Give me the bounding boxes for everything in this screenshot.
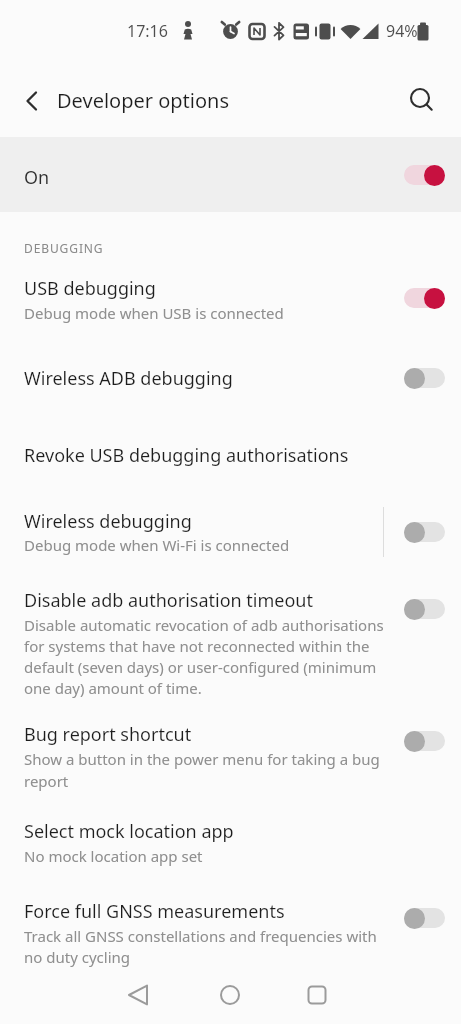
staticText: report — [24, 771, 69, 791]
button[interactable]: Bug report shortcut — [0, 711, 461, 793]
staticText: Force full GNSS measurements — [24, 899, 285, 924]
button[interactable] — [299, 977, 335, 1013]
button[interactable]: Select mock location app — [0, 808, 461, 878]
button[interactable] — [404, 83, 438, 117]
staticText: Wireless ADB debugging — [24, 366, 233, 391]
button[interactable]: USB debugging — [0, 265, 461, 340]
button[interactable]: Wireless debugging — [0, 498, 461, 566]
staticText: Debug mode when Wi-Fi is connected — [24, 535, 290, 555]
button[interactable] — [404, 366, 445, 390]
staticText: Developer options — [57, 87, 230, 114]
button[interactable]: Revoke USB debugging authorisations — [0, 427, 461, 483]
button[interactable] — [404, 520, 445, 544]
button[interactable] — [14, 85, 46, 117]
staticText: Show a button in the power menu for taki… — [24, 749, 380, 769]
staticText: for systems that have not reconnected wi… — [24, 636, 370, 656]
staticText: USB debugging — [24, 276, 156, 301]
button[interactable] — [404, 906, 445, 930]
button[interactable] — [404, 163, 445, 187]
button[interactable]: On — [0, 137, 461, 212]
staticText: Revoke USB debugging authorisations — [24, 443, 349, 468]
staticText: 17:16 — [127, 20, 168, 42]
button[interactable]: Wireless ADB debugging — [0, 350, 461, 406]
button[interactable] — [404, 286, 445, 310]
button[interactable] — [404, 729, 445, 753]
staticText: no duty cycling — [24, 947, 130, 967]
button[interactable] — [120, 977, 156, 1013]
staticText: Disable automatic revocation of adb auth… — [24, 615, 384, 635]
button[interactable]: Disable adb authorisation timeout — [0, 577, 461, 700]
staticText: Debug mode when USB is connected — [24, 303, 284, 323]
staticText: 94% — [386, 20, 418, 42]
staticText: No mock location app set — [24, 846, 203, 866]
staticText: Select mock location app — [24, 819, 234, 844]
button[interactable] — [404, 597, 445, 621]
staticText: On — [24, 165, 50, 190]
staticText: Track all GNSS constellations and freque… — [24, 926, 377, 946]
staticText: Wireless debugging — [24, 509, 192, 534]
staticText: one day) amount of time. — [24, 678, 202, 698]
button[interactable] — [212, 977, 248, 1013]
staticText: Disable adb authorisation timeout — [24, 588, 313, 613]
staticText: Bug report shortcut — [24, 722, 192, 747]
staticText: DEBUGGING — [24, 240, 104, 256]
staticText: default (seven days) or user-configured … — [24, 657, 377, 677]
button[interactable]: Force full GNSS measurements — [0, 888, 461, 978]
